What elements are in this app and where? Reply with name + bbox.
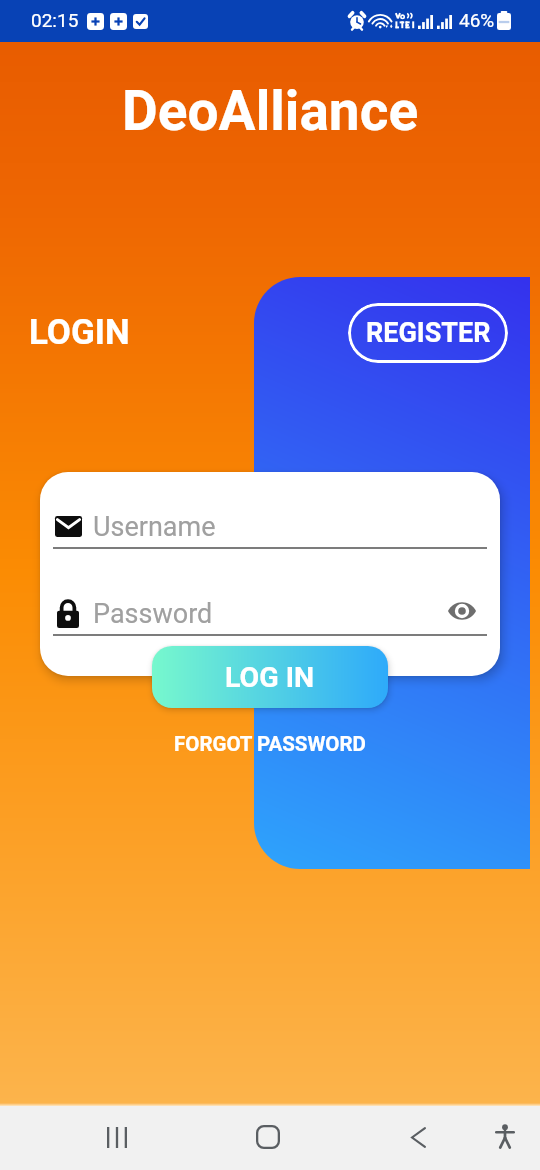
button[interactable]: REGISTER	[348, 303, 508, 363]
staticText: LOG IN	[225, 661, 315, 694]
button[interactable]: Home	[208, 1106, 327, 1170]
button[interactable]: Accessibility	[471, 1106, 539, 1170]
staticText: REGISTER	[366, 317, 491, 349]
button[interactable]: Username	[52, 504, 486, 549]
staticText: LOGIN	[29, 312, 130, 353]
button[interactable]: LOG IN	[152, 646, 388, 708]
button[interactable]: Back	[366, 1106, 471, 1170]
staticText: FORGOT PASSWORD	[174, 732, 366, 756]
button[interactable]: FORGOT PASSWORD	[166, 728, 374, 760]
button[interactable]: Recents	[57, 1106, 176, 1170]
button[interactable]: Show password	[441, 590, 483, 632]
staticText: 46%	[459, 9, 495, 31]
staticText: Password	[93, 598, 213, 630]
button[interactable]: Password	[52, 591, 486, 636]
staticText: Username	[93, 511, 216, 543]
button[interactable]: LOGIN	[23, 306, 136, 359]
staticText: DeoAlliance	[122, 79, 419, 143]
staticText: 02:15	[31, 9, 79, 31]
